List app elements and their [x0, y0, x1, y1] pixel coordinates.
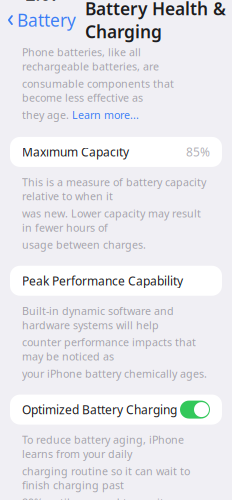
staticText: 85% [186, 144, 210, 160]
staticText: they age. [22, 108, 72, 122]
staticText: usage between charges. [22, 238, 146, 252]
button[interactable]: Optimized Battery Charging [10, 395, 222, 425]
button[interactable]: Battery [0, 5, 76, 36]
staticText: 80% until you need to use it. [22, 495, 167, 500]
staticText: Built-in dynamic software and hardware s… [22, 304, 174, 332]
staticText: counter performance impacts that may be … [22, 335, 196, 363]
button[interactable]: Peak Performance Capability [10, 266, 222, 296]
staticText: your iPhone battery chemically ages. [22, 366, 207, 381]
button[interactable]: Maximum Capacity [10, 137, 222, 167]
staticText: Peak Performance Capability [22, 273, 183, 289]
staticText: was new. Lower capacity may result in fe… [22, 206, 201, 235]
staticText: charging routine so it can wait to finis… [22, 464, 190, 492]
staticText: Maximum Capacity [22, 144, 129, 160]
staticText: Battery Health & Charging [85, 0, 226, 43]
staticText: This is a measure of battery capacity re… [22, 175, 206, 203]
staticText: consumable components that become less e… [22, 76, 174, 105]
staticText: Optimized Battery Charging [22, 402, 177, 417]
staticText: Phone batteries, like all rechargeable b… [22, 45, 159, 73]
staticText: 2:07 [25, 0, 60, 6]
staticText: 4G [177, 0, 195, 3]
button[interactable]: Learn more... [72, 108, 139, 122]
staticText: Battery [17, 9, 76, 32]
staticText: To reduce battery aging, iPhone learns f… [22, 433, 184, 461]
staticText: Learn more... [72, 108, 139, 122]
